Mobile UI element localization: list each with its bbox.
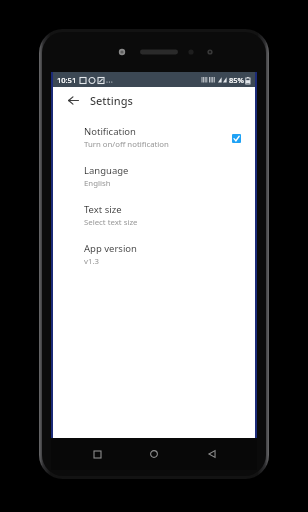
- staticText: Notification: [84, 125, 136, 138]
- button[interactable]: Recent apps: [85, 442, 109, 466]
- staticText: Turn on/off notification: [84, 139, 169, 150]
- staticText: Language: [84, 164, 129, 177]
- button[interactable]: Language: [53, 163, 255, 190]
- staticText: 10:51: [57, 75, 77, 85]
- staticText: 85%: [229, 75, 244, 85]
- button[interactable]: Back: [64, 91, 82, 109]
- staticText: Select text size: [84, 217, 138, 228]
- staticText: Settings: [90, 93, 133, 108]
- staticText: App version: [84, 242, 137, 255]
- staticText: v1.3: [84, 256, 99, 267]
- button[interactable]: App version: [53, 241, 255, 268]
- button[interactable]: Notification toggle: [229, 131, 243, 145]
- staticText: Text size: [84, 203, 122, 216]
- button[interactable]: Back: [200, 442, 224, 466]
- button[interactable]: Notification: [53, 124, 255, 151]
- button[interactable]: Text size: [53, 202, 255, 229]
- button[interactable]: Home: [142, 442, 166, 466]
- staticText: English: [84, 178, 111, 189]
